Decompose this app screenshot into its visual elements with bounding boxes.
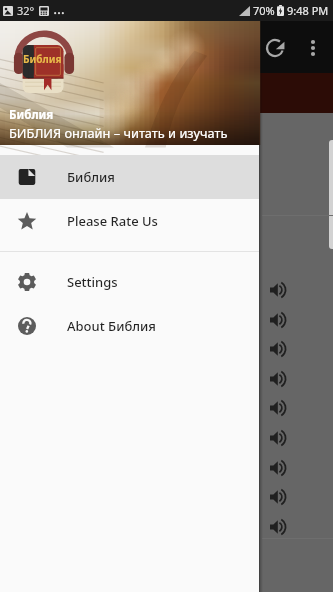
staticText: Библия xyxy=(9,107,54,123)
staticText: Please Rate Us xyxy=(67,212,158,230)
button[interactable]: More options xyxy=(305,38,321,58)
button[interactable]: Библия xyxy=(0,155,259,199)
staticText: БИБЛИЯ онлайн – читать и изучать xyxy=(9,124,228,141)
button[interactable]: About Библия xyxy=(0,304,259,348)
staticText: 70% xyxy=(253,3,275,18)
staticText: 9:48 PM xyxy=(287,3,329,18)
staticText: Settings xyxy=(67,273,118,291)
staticText: 32° xyxy=(17,3,35,18)
button[interactable]: Please Rate Us xyxy=(0,199,259,243)
staticText: About Библия xyxy=(67,317,156,335)
staticText: Библия xyxy=(23,52,62,66)
button[interactable]: Settings xyxy=(0,260,259,304)
staticText: Библия xyxy=(67,168,115,186)
button[interactable]: Refresh xyxy=(265,38,285,58)
